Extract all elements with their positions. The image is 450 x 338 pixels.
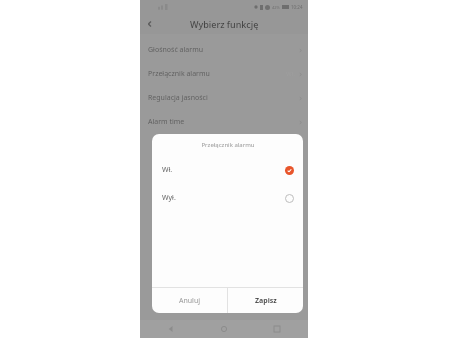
staticText: 42% (272, 5, 280, 10)
staticText: Anuluj (179, 296, 201, 306)
button[interactable]: Home (217, 322, 231, 336)
staticText: Wł. (162, 165, 173, 175)
button[interactable]: Regulacja jasności (140, 86, 308, 110)
button[interactable]: Alarm time (140, 110, 308, 134)
staticText: Przełącznik alarmu (148, 69, 210, 79)
staticText: Przełącznik alarmu (201, 141, 255, 149)
staticText: Głośność alarmu (148, 45, 204, 55)
staticText: Regulacja jasności (148, 93, 208, 103)
button[interactable]: Back (140, 14, 160, 34)
button[interactable]: Wył. (152, 184, 303, 212)
staticText: 10:24 (291, 4, 303, 10)
button[interactable]: Przełącznik alarmu (140, 62, 308, 86)
button[interactable]: Back (164, 322, 178, 336)
button[interactable]: Anuluj (152, 288, 227, 313)
button[interactable]: Recents (270, 322, 284, 336)
button[interactable]: Wł. (152, 156, 303, 184)
button[interactable]: Głośność alarmu (140, 38, 308, 62)
staticText: Alarm time (148, 117, 185, 127)
button[interactable]: Zapisz (228, 288, 303, 313)
staticText: Wybierz funkcję (190, 18, 259, 30)
staticText: Zapisz (255, 296, 277, 306)
staticText: Wył. (162, 193, 176, 203)
